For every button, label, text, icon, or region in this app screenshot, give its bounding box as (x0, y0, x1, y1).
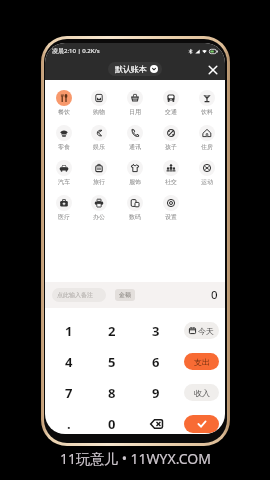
button[interactable]: Backspace (134, 408, 178, 434)
button[interactable]: 汽车 (46, 158, 81, 193)
staticText: 设置 (165, 213, 177, 221)
staticText: 8 (108, 384, 116, 402)
staticText: 娱乐 (93, 143, 105, 151)
button[interactable]: 金额 (115, 289, 135, 301)
button[interactable]: 今天 (184, 322, 219, 339)
staticText: 今天 (198, 326, 214, 336)
staticText: 凌晨2:10 | 0.2K/s (52, 47, 100, 55)
button[interactable]: 服饰 (117, 158, 153, 193)
staticText: 购物 (93, 108, 105, 116)
button[interactable]: 9 (134, 377, 178, 408)
button[interactable]: 通讯 (117, 123, 153, 158)
staticText: . (67, 415, 71, 433)
button[interactable]: 收入 (184, 384, 219, 401)
button[interactable]: 餐饮 (46, 88, 81, 123)
staticText: 金额 (119, 291, 131, 299)
staticText: 旅行 (93, 178, 105, 186)
staticText: 服饰 (129, 178, 141, 186)
button[interactable]: 5 (90, 346, 134, 377)
other: Backspace (150, 419, 163, 429)
staticText: 住房 (201, 143, 213, 151)
staticText: 通讯 (129, 143, 141, 151)
staticText: 0 (108, 415, 116, 433)
button[interactable]: 6 (134, 346, 178, 377)
button[interactable]: 购物 (81, 88, 117, 123)
button[interactable]: 3 (134, 315, 178, 346)
button[interactable]: 医疗 (46, 193, 81, 228)
staticText: 数码 (129, 213, 141, 221)
button[interactable]: . (47, 408, 90, 434)
button[interactable]: 旅行 (81, 158, 117, 193)
staticText: 运动 (201, 178, 213, 186)
staticText: 收入 (194, 388, 210, 398)
staticText: 汽车 (58, 178, 70, 186)
staticText: 日用 (129, 108, 141, 116)
staticText: 零食 (58, 143, 70, 151)
button[interactable]: 住房 (189, 123, 225, 158)
staticText: 支出 (194, 357, 210, 367)
button[interactable]: 设置 (153, 193, 189, 228)
button[interactable]: Confirm (184, 415, 219, 433)
staticText: 饮料 (201, 108, 213, 116)
staticText: 餐饮 (58, 108, 70, 116)
button[interactable]: 支出 (184, 353, 219, 370)
staticText: 默认账本 (115, 64, 147, 74)
button[interactable]: 日用 (117, 88, 153, 123)
staticText: 点此输入备注 (57, 291, 93, 299)
button[interactable]: 7 (47, 377, 90, 408)
staticText: 0 (211, 287, 218, 303)
staticText: 7 (65, 384, 73, 402)
button[interactable]: 运动 (189, 158, 225, 193)
button[interactable]: 办公 (81, 193, 117, 228)
button[interactable]: 零食 (46, 123, 81, 158)
button[interactable]: 饮料 (189, 88, 225, 123)
button[interactable]: 8 (90, 377, 134, 408)
staticText: 5 (108, 353, 116, 371)
staticText: 办公 (93, 213, 105, 221)
button[interactable]: 数码 (117, 193, 153, 228)
staticText: 3 (152, 322, 160, 340)
staticText: 9 (152, 384, 160, 402)
button[interactable]: 点此输入备注 (52, 288, 106, 302)
button[interactable]: 1 (47, 315, 90, 346)
staticText: 6 (152, 353, 160, 371)
staticText: 4 (65, 353, 73, 371)
staticText: 社交 (165, 178, 177, 186)
staticText: 孩子 (165, 143, 177, 151)
button[interactable]: 4 (47, 346, 90, 377)
button[interactable]: 娱乐 (81, 123, 117, 158)
staticText: 11玩意儿 • 11WYX.COM (60, 449, 211, 468)
button[interactable]: 交通 (153, 88, 189, 123)
button[interactable]: Close (204, 61, 222, 79)
button[interactable]: 默认账本 (108, 62, 162, 76)
button[interactable]: 2 (90, 315, 134, 346)
button[interactable]: 0 (90, 408, 134, 434)
staticText: 交通 (165, 108, 177, 116)
staticText: 2 (108, 322, 116, 340)
button[interactable]: 孩子 (153, 123, 189, 158)
staticText: 医疗 (58, 213, 70, 221)
staticText: 1 (65, 322, 73, 340)
button[interactable]: 社交 (153, 158, 189, 193)
